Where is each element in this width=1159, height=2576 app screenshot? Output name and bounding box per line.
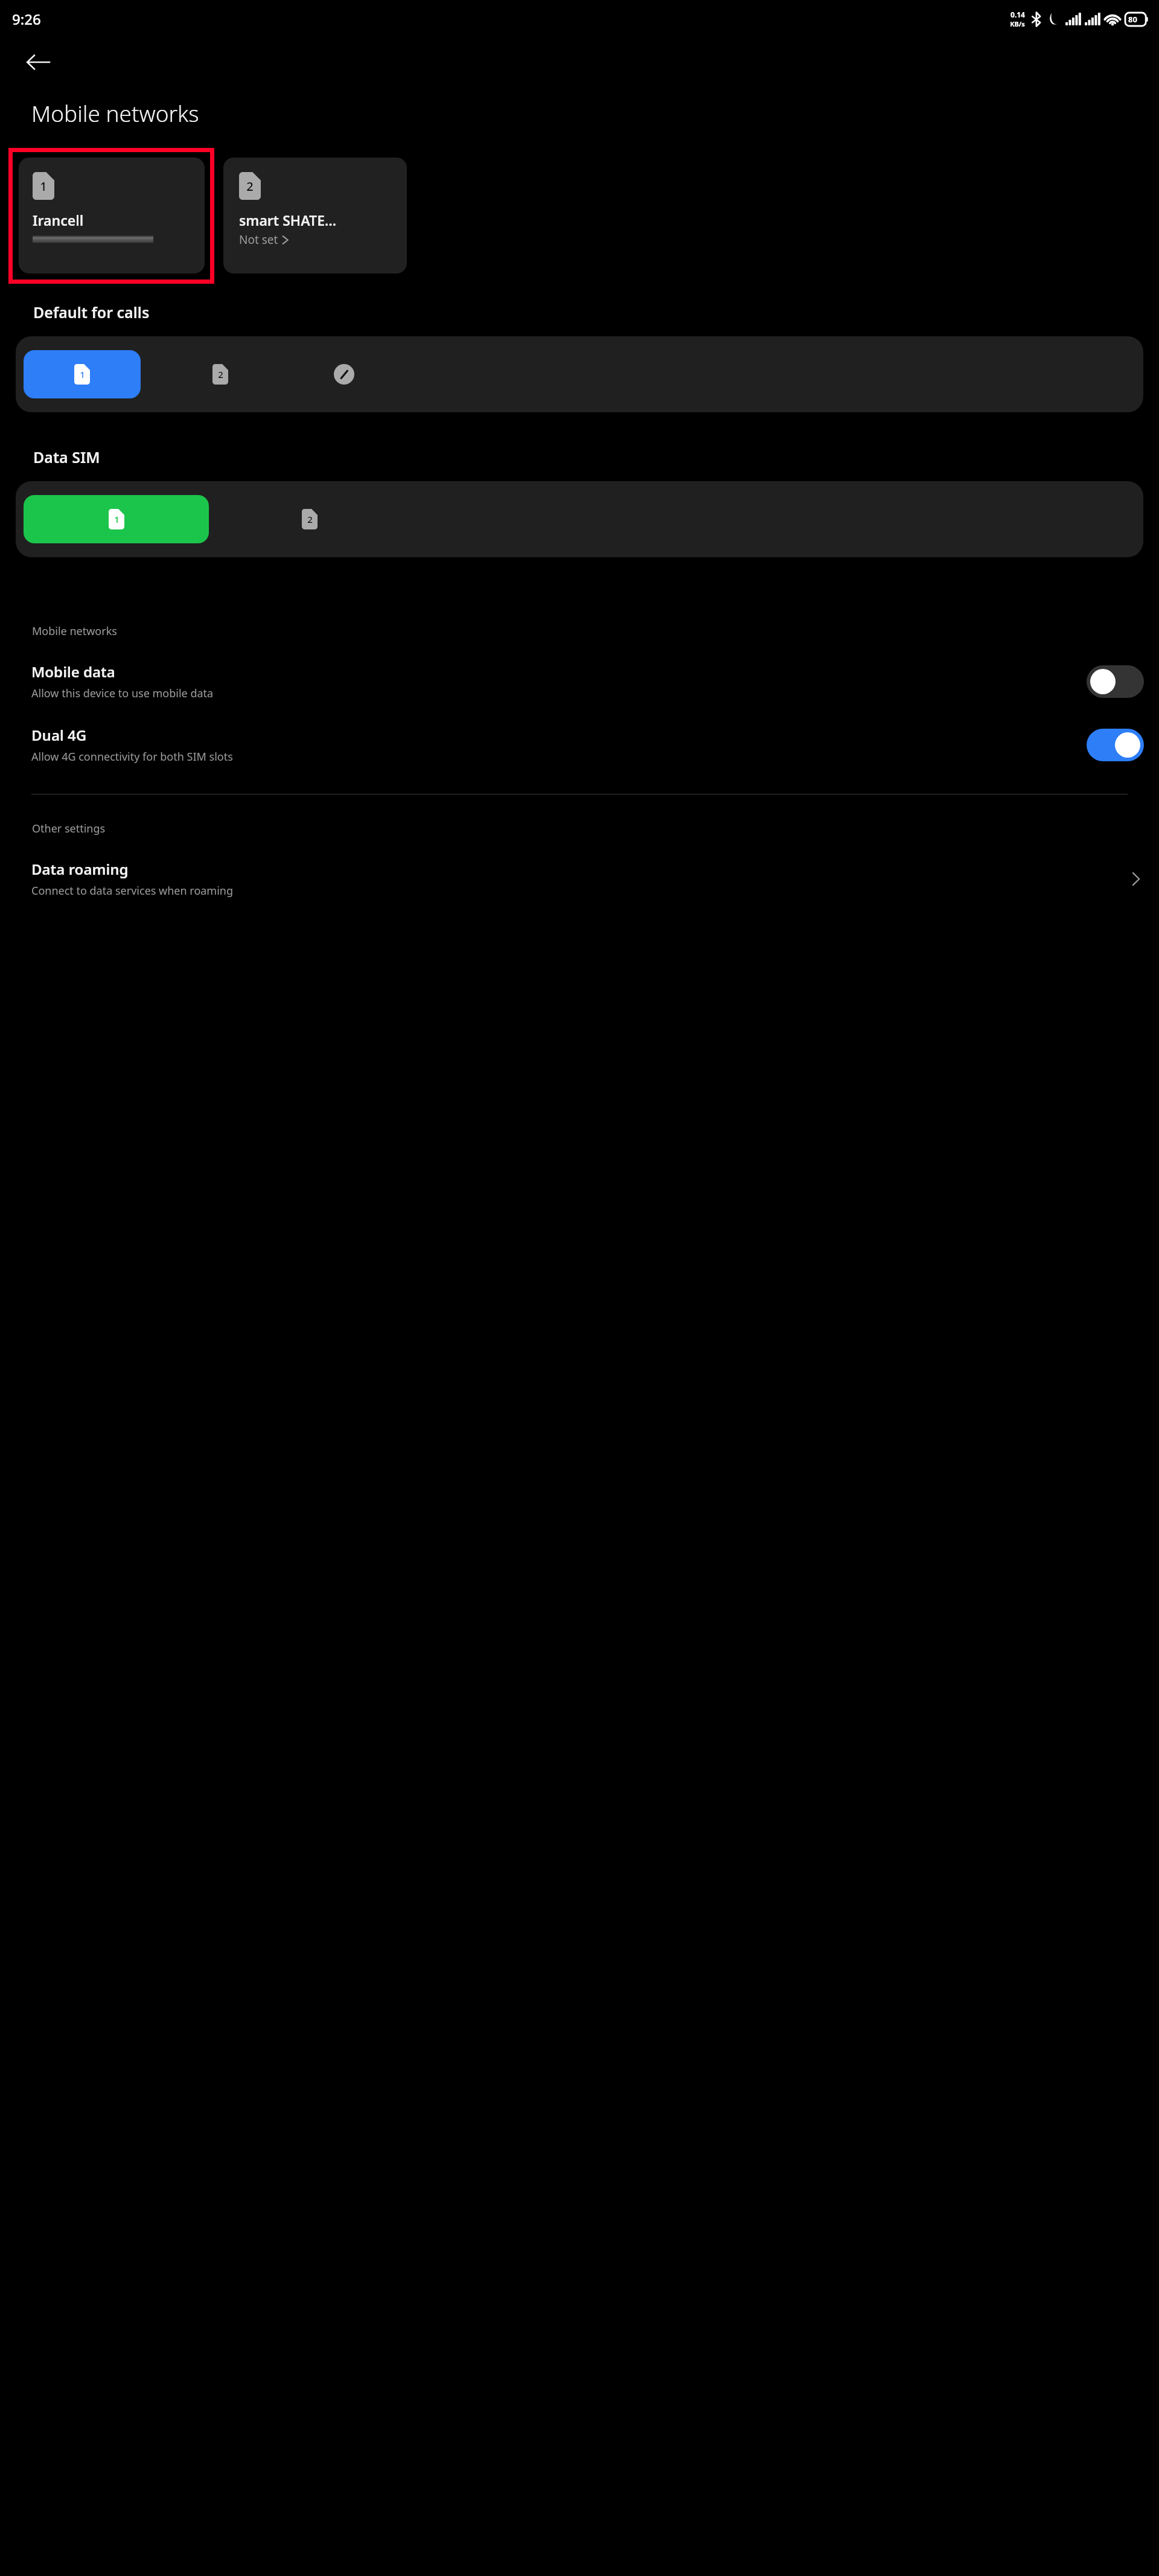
staticText: 1 xyxy=(80,368,85,380)
button[interactable]: Ask every time xyxy=(286,350,403,398)
button[interactable]: Off xyxy=(1087,665,1144,698)
staticText: Not set xyxy=(239,232,278,248)
staticText: 80 xyxy=(1128,14,1137,25)
staticText: 0.14 xyxy=(1011,10,1025,19)
button[interactable]: 2 xyxy=(223,158,407,273)
button[interactable]: 1 xyxy=(19,158,205,273)
staticText: Irancell xyxy=(33,211,84,229)
staticText: smart SHATE… xyxy=(239,211,337,229)
staticText: Other settings xyxy=(32,821,106,836)
button[interactable]: SIM 1 data xyxy=(24,495,209,543)
staticText: 2 xyxy=(218,368,223,380)
button[interactable]: SIM 2 default for calls xyxy=(162,350,279,398)
staticText: Mobile networks xyxy=(32,624,117,639)
button[interactable]: Data roaming xyxy=(0,855,1159,902)
staticText: Mobile networks xyxy=(31,98,199,128)
button[interactable]: SIM 1 default for calls xyxy=(24,350,141,398)
staticText: Connect to data services when roaming xyxy=(31,883,234,898)
staticText: 1 xyxy=(40,178,47,194)
staticText: Data roaming xyxy=(31,859,129,879)
staticText: KB/s xyxy=(1010,19,1025,28)
button[interactable]: Dual 4G xyxy=(0,721,1159,768)
staticText: Dual 4G xyxy=(31,725,87,745)
button[interactable]: SIM 2 data xyxy=(217,495,402,543)
staticText: Allow 4G connectivity for both SIM slots xyxy=(31,749,233,764)
button[interactable]: On xyxy=(1087,729,1144,761)
staticText: 1 xyxy=(114,513,120,525)
staticText: Default for calls xyxy=(33,302,150,322)
staticText: Mobile data xyxy=(31,662,115,682)
staticText: 9:26 xyxy=(12,9,41,29)
button[interactable]: Back xyxy=(21,45,56,80)
staticText: 2 xyxy=(246,178,254,194)
staticText: 2 xyxy=(307,513,313,525)
staticText: Allow this device to use mobile data xyxy=(31,686,214,701)
staticText: Data SIM xyxy=(33,447,100,467)
button[interactable]: Mobile data xyxy=(0,658,1159,705)
